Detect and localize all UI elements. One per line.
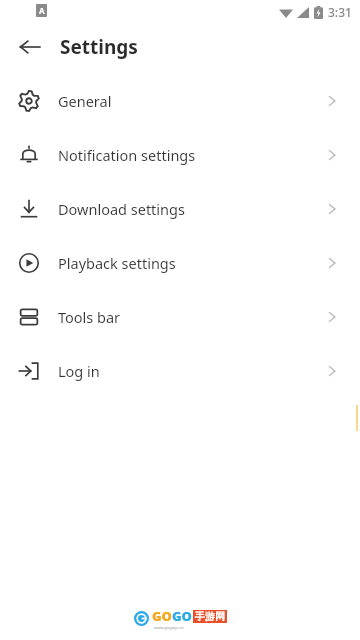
button[interactable]: Download settings [0, 182, 360, 236]
button[interactable]: Playback settings [0, 236, 360, 290]
staticText: www.gogoyx.cn [154, 625, 184, 630]
staticText: GO [152, 607, 172, 625]
staticText: Playback settings [58, 253, 176, 273]
button[interactable]: Back [10, 27, 50, 67]
staticText: Settings [60, 34, 138, 60]
staticText: A [39, 5, 45, 16]
staticText: General [58, 91, 112, 111]
staticText: Notification settings [58, 145, 196, 165]
staticText: Log in [58, 361, 100, 381]
button[interactable]: Notification settings [0, 128, 360, 182]
staticText: GO [172, 607, 192, 625]
button[interactable]: General [0, 74, 360, 128]
staticText: Tools bar [58, 307, 121, 327]
staticText: 3:31 [328, 4, 352, 20]
button[interactable]: Log in [0, 344, 360, 398]
staticText: Download settings [58, 199, 185, 219]
button[interactable]: Tools bar [0, 290, 360, 344]
staticText: 手游网 [195, 610, 225, 623]
